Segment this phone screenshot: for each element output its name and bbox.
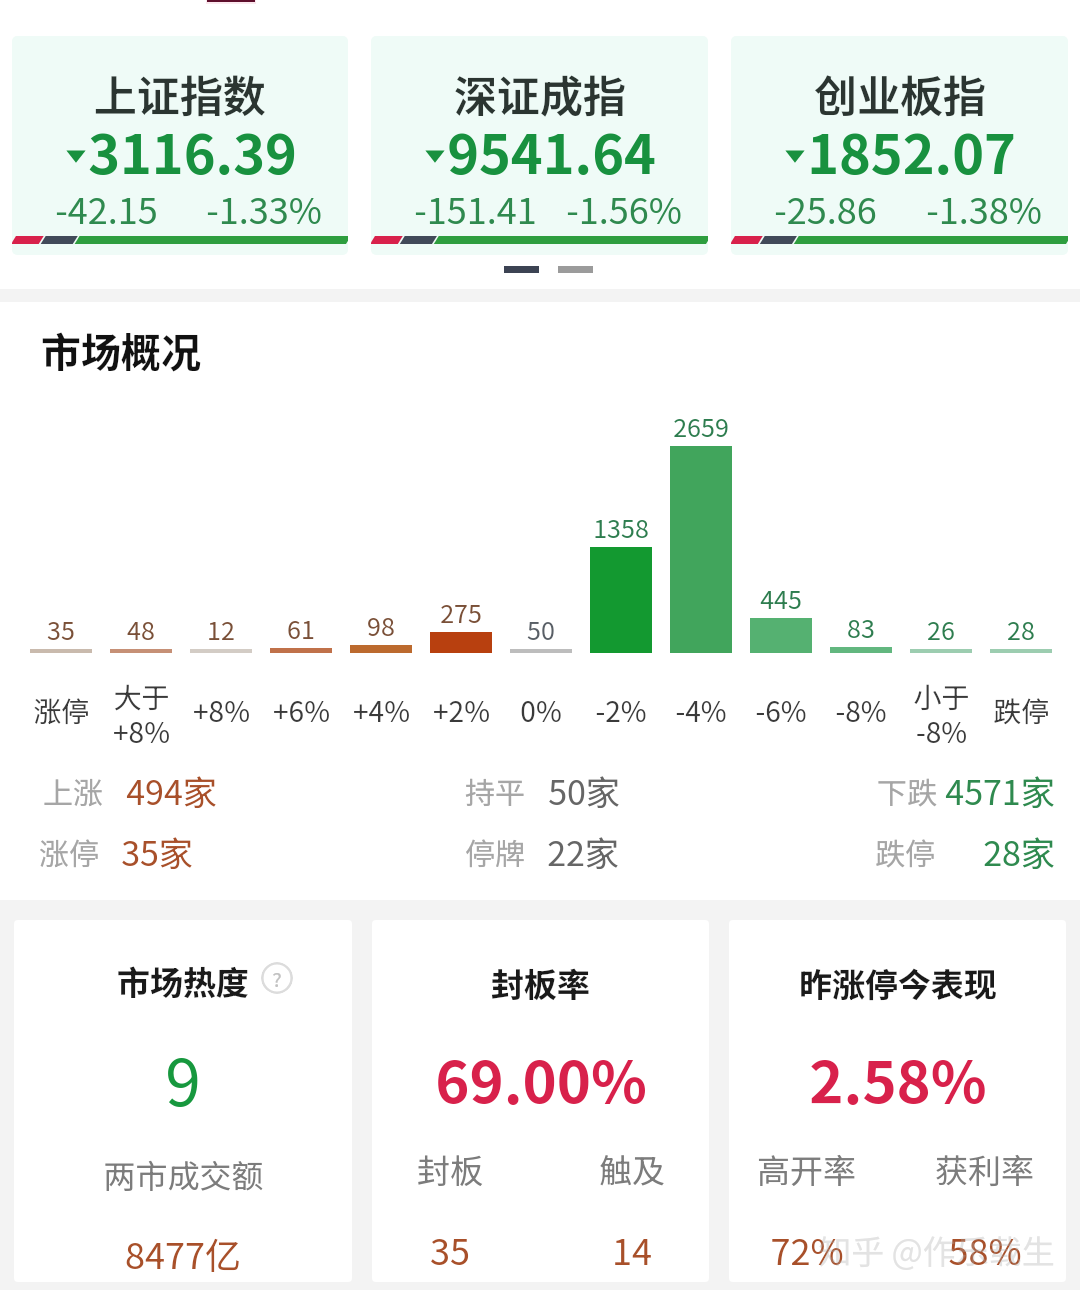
- staticText: 69.00%: [435, 1037, 647, 1121]
- staticText: 涨停: [33, 690, 90, 731]
- staticText: 28: [1007, 611, 1035, 647]
- staticText: 小于 -8%: [913, 676, 970, 744]
- staticText: 445: [760, 580, 802, 616]
- button[interactable]: 昨涨停今表现: [729, 920, 1066, 1282]
- staticText: 275: [440, 594, 482, 630]
- staticText: 上涨: [43, 769, 103, 812]
- staticText: 市场概况: [41, 321, 201, 379]
- staticText: -4%: [675, 690, 727, 731]
- staticText: +8%: [193, 690, 250, 731]
- staticText: 封板率: [491, 959, 590, 1007]
- staticText: -6%: [755, 690, 807, 731]
- staticText: 26: [927, 611, 955, 647]
- staticText: 上证指数: [94, 62, 266, 124]
- staticText: 0%: [520, 690, 562, 731]
- staticText: +2%: [433, 690, 490, 731]
- staticText: 2.58%: [809, 1037, 987, 1121]
- staticText: 持平: [465, 769, 525, 812]
- staticText: -151.41: [414, 182, 537, 234]
- staticText: 72%: [770, 1223, 844, 1275]
- staticText: 下跌: [877, 769, 937, 812]
- staticText: -1.56%: [566, 182, 682, 234]
- staticText: 58%: [948, 1223, 1022, 1275]
- staticText: -1.33%: [206, 182, 322, 234]
- staticText: 48: [127, 611, 155, 647]
- staticText: 2659: [673, 408, 729, 444]
- staticText: 494家: [126, 766, 217, 815]
- staticText: 98: [367, 607, 395, 643]
- button[interactable]: 上证指数: [12, 36, 348, 255]
- staticText: 深证成指: [454, 62, 626, 124]
- staticText: 28家: [983, 827, 1055, 876]
- staticText: 知乎 @作乐载生: [818, 1226, 1055, 1274]
- staticText: 50: [527, 611, 555, 647]
- staticText: 跌停: [993, 690, 1050, 731]
- button[interactable]: 深证成指: [371, 36, 708, 255]
- staticText: 触及: [599, 1145, 665, 1193]
- staticText: -42.15: [55, 182, 158, 234]
- button[interactable]: 封板率: [372, 920, 709, 1282]
- button[interactable]: 创业板指: [731, 36, 1068, 255]
- staticText: +6%: [273, 690, 330, 731]
- staticText: 35: [47, 611, 75, 647]
- staticText: 封板: [417, 1145, 483, 1193]
- staticText: 14: [612, 1223, 652, 1275]
- staticText: 市场热度: [117, 957, 249, 1005]
- staticText: 1358: [593, 509, 649, 545]
- staticText: ?: [272, 964, 282, 993]
- staticText: 4571家: [945, 766, 1055, 815]
- staticText: 8477亿: [125, 1227, 241, 1279]
- staticText: 50家: [548, 766, 620, 815]
- staticText: 1852.07: [807, 111, 1016, 189]
- staticText: 12: [207, 611, 235, 647]
- staticText: -8%: [835, 690, 887, 731]
- staticText: 大于 +8%: [113, 676, 170, 744]
- button[interactable]: 市场热度: [14, 920, 352, 1282]
- staticText: -2%: [595, 690, 647, 731]
- staticText: 获利率: [935, 1145, 1034, 1193]
- staticText: 22家: [547, 827, 619, 876]
- staticText: 停牌: [465, 830, 525, 873]
- staticText: 9: [165, 1032, 201, 1125]
- staticText: 35家: [121, 827, 193, 876]
- staticText: 跌停: [875, 830, 935, 873]
- staticText: -1.38%: [926, 182, 1042, 234]
- staticText: 高开率: [757, 1145, 856, 1193]
- staticText: 涨停: [39, 830, 99, 873]
- staticText: 两市成交额: [103, 1151, 264, 1197]
- staticText: 9541.64: [447, 111, 656, 189]
- staticText: +4%: [353, 690, 410, 731]
- staticText: 创业板指: [814, 62, 986, 124]
- staticText: 3116.39: [88, 111, 297, 189]
- staticText: 61: [287, 610, 315, 646]
- staticText: 昨涨停今表现: [799, 959, 997, 1007]
- staticText: 83: [847, 609, 875, 645]
- staticText: -25.86: [774, 182, 877, 234]
- button[interactable]: Help: [261, 962, 293, 994]
- staticText: 35: [430, 1223, 470, 1275]
